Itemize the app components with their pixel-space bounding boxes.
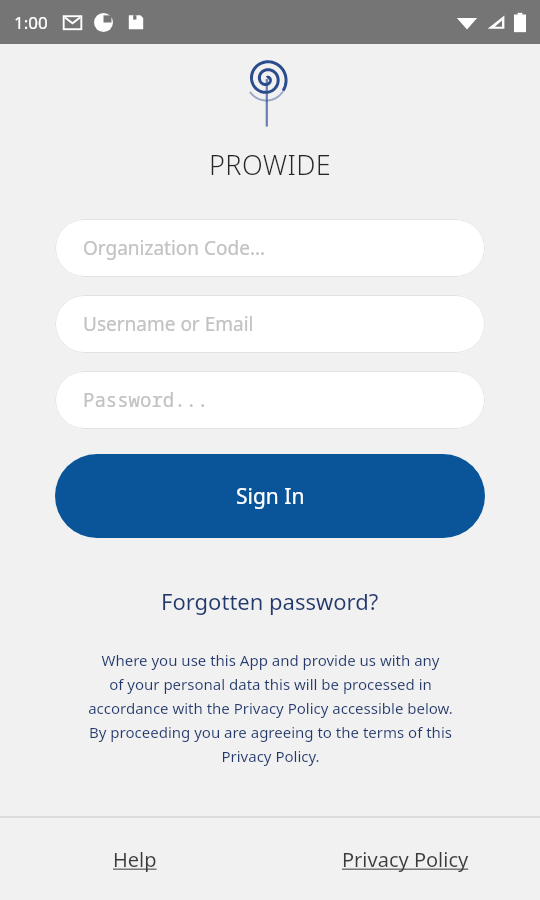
staticText: PROWIDE	[209, 146, 332, 183]
staticText: Forgotten password?	[161, 586, 379, 616]
staticText: Password...	[83, 387, 209, 413]
staticText: Help	[113, 846, 157, 873]
staticText: Username or Email	[83, 311, 254, 337]
button[interactable]: Password...	[55, 371, 485, 429]
staticText: Sign In	[236, 482, 305, 511]
button[interactable]: Username or Email	[55, 295, 485, 353]
staticText: Where you use this App and provide us wi…	[88, 650, 453, 766]
button[interactable]: Help	[0, 818, 270, 900]
button[interactable]: Forgotten password?	[0, 586, 540, 616]
staticText: 1:00	[14, 11, 48, 34]
staticText: Organization Code...	[83, 235, 266, 261]
button[interactable]: Sign In	[55, 454, 485, 538]
staticText: Privacy Policy	[342, 846, 469, 873]
button[interactable]: Privacy Policy	[270, 818, 540, 900]
button[interactable]: Organization Code...	[55, 219, 485, 277]
